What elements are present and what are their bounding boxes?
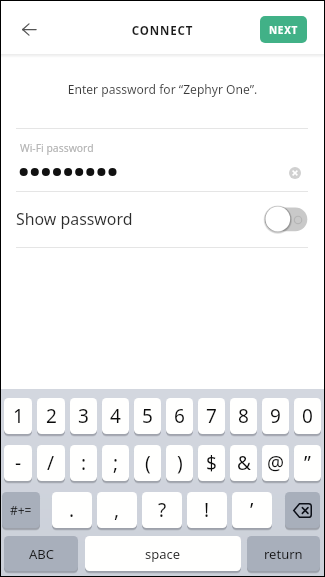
staticText: 6 bbox=[174, 403, 185, 429]
staticText: Show password bbox=[16, 208, 133, 230]
button[interactable]: NEXT bbox=[260, 16, 307, 43]
staticText: , bbox=[114, 497, 120, 523]
staticText: NEXT bbox=[269, 23, 298, 37]
button[interactable]: 0 bbox=[294, 398, 321, 434]
button[interactable]: 5 bbox=[134, 398, 161, 434]
staticText: ’ bbox=[250, 497, 254, 523]
button[interactable]: ! bbox=[187, 492, 227, 528]
staticText: 3 bbox=[78, 403, 89, 429]
button[interactable]: 6 bbox=[166, 398, 193, 434]
staticText: ) bbox=[177, 450, 183, 476]
staticText: return bbox=[264, 545, 303, 563]
button[interactable]: 1 bbox=[4, 398, 32, 434]
button[interactable]: - bbox=[4, 445, 32, 481]
button[interactable]: Wi-Fi password bbox=[1, 129, 324, 191]
staticText: . bbox=[69, 497, 75, 523]
staticText: ” bbox=[304, 450, 311, 476]
staticText: Wi-Fi password bbox=[20, 141, 94, 155]
staticText: ( bbox=[145, 450, 151, 476]
button[interactable]: . bbox=[52, 492, 92, 528]
button[interactable]: 2 bbox=[37, 398, 65, 434]
button[interactable]: ” bbox=[294, 445, 321, 481]
button[interactable]: @ bbox=[262, 445, 289, 481]
button[interactable]: ’ bbox=[232, 492, 272, 528]
button[interactable]: 3 bbox=[70, 398, 97, 434]
button[interactable]: : bbox=[70, 445, 97, 481]
button[interactable]: ) bbox=[166, 445, 193, 481]
staticText: 9 bbox=[270, 403, 281, 429]
button[interactable]: , bbox=[97, 492, 137, 528]
staticText: CONNECT bbox=[1, 23, 324, 39]
staticText: - bbox=[15, 450, 22, 476]
staticText: ; bbox=[113, 450, 119, 476]
button[interactable]: & bbox=[230, 445, 257, 481]
staticText: 2 bbox=[46, 403, 57, 429]
staticText: : bbox=[81, 450, 87, 476]
staticText: space bbox=[145, 545, 181, 563]
button[interactable]: Back bbox=[14, 14, 44, 44]
staticText: 4 bbox=[110, 403, 121, 429]
staticText: ! bbox=[204, 497, 210, 523]
staticText: 0 bbox=[302, 403, 313, 429]
button[interactable]: Show password toggle bbox=[263, 204, 311, 236]
staticText: 5 bbox=[142, 403, 153, 429]
staticText: Enter password for “Zephyr One”. bbox=[1, 81, 324, 97]
button[interactable]: Show password bbox=[1, 192, 324, 247]
staticText: ? bbox=[158, 497, 167, 523]
button[interactable]: 8 bbox=[230, 398, 257, 434]
staticText: 8 bbox=[238, 403, 249, 429]
button[interactable]: space bbox=[85, 536, 241, 571]
button[interactable]: ABC bbox=[4, 536, 78, 571]
button[interactable]: return bbox=[247, 536, 320, 571]
staticText: @ bbox=[267, 450, 285, 476]
other: Backspace bbox=[285, 492, 320, 528]
button[interactable]: Backspace bbox=[285, 492, 320, 528]
button[interactable]: Clear password bbox=[283, 161, 307, 185]
staticText: 7 bbox=[206, 403, 217, 429]
button[interactable]: 9 bbox=[262, 398, 289, 434]
button[interactable]: ( bbox=[134, 445, 161, 481]
button[interactable]: ; bbox=[102, 445, 129, 481]
staticText: & bbox=[237, 450, 251, 476]
button[interactable]: 7 bbox=[198, 398, 225, 434]
button[interactable]: $ bbox=[198, 445, 225, 481]
button[interactable]: 4 bbox=[102, 398, 129, 434]
button[interactable]: ? bbox=[142, 492, 182, 528]
staticText: ABC bbox=[29, 545, 54, 563]
staticText: $ bbox=[206, 450, 217, 476]
button[interactable]: / bbox=[37, 445, 65, 481]
staticText: / bbox=[47, 450, 55, 476]
staticText: #+= bbox=[10, 502, 32, 518]
button[interactable]: #+= bbox=[2, 492, 40, 528]
staticText: 1 bbox=[13, 403, 24, 429]
